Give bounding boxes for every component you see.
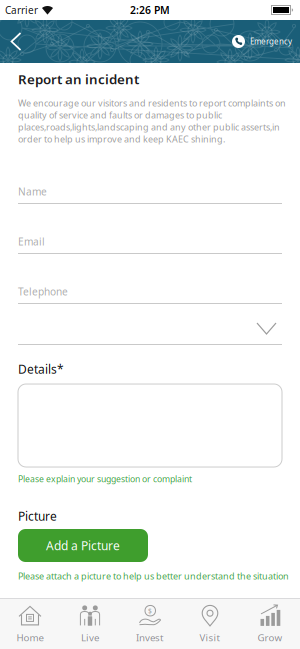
button[interactable]: Emergency	[232, 25, 300, 58]
staticText: Details*	[18, 361, 64, 377]
button[interactable]: Home	[0, 599, 60, 649]
staticText: Carrier	[5, 3, 38, 17]
staticText: Email	[18, 235, 45, 248]
button[interactable]: $	[120, 599, 180, 649]
staticText: quality of service and faults or damages…	[18, 109, 222, 121]
staticText: Invest	[136, 631, 164, 644]
staticText: Live	[81, 631, 99, 644]
button[interactable]: Live	[60, 599, 120, 649]
staticText: Please explain your suggestion or compla…	[18, 473, 192, 485]
button[interactable]: Add a Picture	[18, 529, 148, 562]
staticText: Grow	[257, 631, 282, 644]
button[interactable]: Name	[18, 185, 282, 204]
staticText: Home	[16, 631, 43, 644]
button[interactable]	[18, 377, 282, 467]
staticText: Add a Picture	[46, 537, 120, 553]
staticText: $	[148, 606, 152, 615]
staticText: order to help us improve and keep KAEC s…	[18, 133, 225, 145]
button[interactable]: Email	[18, 235, 282, 254]
button[interactable]: Telephone	[18, 285, 282, 304]
staticText: Emergency	[250, 36, 292, 47]
staticText: Visit	[199, 631, 220, 644]
staticText: Name	[18, 185, 47, 198]
staticText: Picture	[18, 508, 57, 524]
button[interactable]	[0, 22, 22, 61]
staticText: 2:26 PM	[130, 3, 170, 17]
button[interactable]: Visit	[180, 599, 240, 649]
button[interactable]	[18, 304, 282, 345]
staticText: Telephone	[18, 285, 68, 298]
staticText: places,roads,lights,landscaping and any …	[18, 121, 280, 133]
staticText: We encourage our visitors and residents …	[18, 97, 286, 109]
staticText: Report an incident	[18, 70, 139, 88]
staticText: Please attach a picture to help us bette…	[18, 570, 289, 582]
button[interactable]: Grow	[240, 599, 300, 649]
